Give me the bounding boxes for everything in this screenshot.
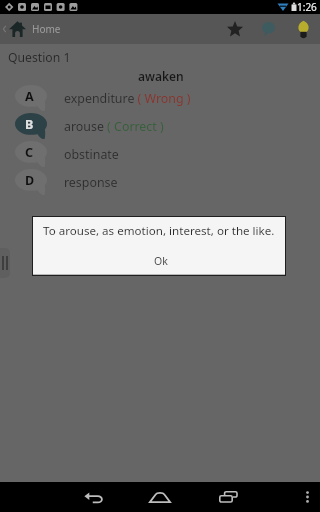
button[interactable]: C bbox=[0, 140, 320, 168]
staticText: Question 1 bbox=[8, 49, 71, 66]
staticText: response bbox=[64, 174, 118, 191]
button[interactable]: More options bbox=[297, 487, 317, 507]
staticText: D bbox=[25, 172, 35, 189]
button[interactable]: Ok bbox=[33, 250, 285, 272]
button[interactable]: Open navigation drawer bbox=[0, 248, 10, 278]
button[interactable]: Comments bbox=[256, 17, 280, 41]
staticText: C bbox=[25, 144, 34, 161]
button[interactable]: Home bbox=[145, 487, 175, 507]
staticText: awaken bbox=[138, 68, 184, 84]
button[interactable]: Hint bbox=[292, 16, 315, 42]
staticText: arouse ( Correct ) bbox=[64, 118, 164, 135]
staticText: To arouse, as emotion, interest, or the … bbox=[43, 223, 275, 239]
staticText: Home bbox=[32, 22, 61, 36]
staticText: Ok bbox=[154, 254, 168, 268]
staticText: expenditure ( Wrong ) bbox=[64, 90, 191, 107]
button[interactable]: Back bbox=[78, 487, 108, 507]
button[interactable]: Recents bbox=[214, 487, 244, 507]
button[interactable]: A bbox=[0, 84, 320, 112]
staticText: B bbox=[25, 116, 34, 133]
staticText: obstinate bbox=[64, 146, 119, 163]
button[interactable]: D bbox=[0, 168, 320, 196]
button[interactable]: B bbox=[0, 112, 320, 140]
staticText: A bbox=[25, 88, 34, 105]
staticText: 1:26 bbox=[297, 0, 317, 14]
button[interactable]: Home bbox=[0, 14, 61, 44]
button[interactable]: Favorites bbox=[222, 17, 247, 41]
